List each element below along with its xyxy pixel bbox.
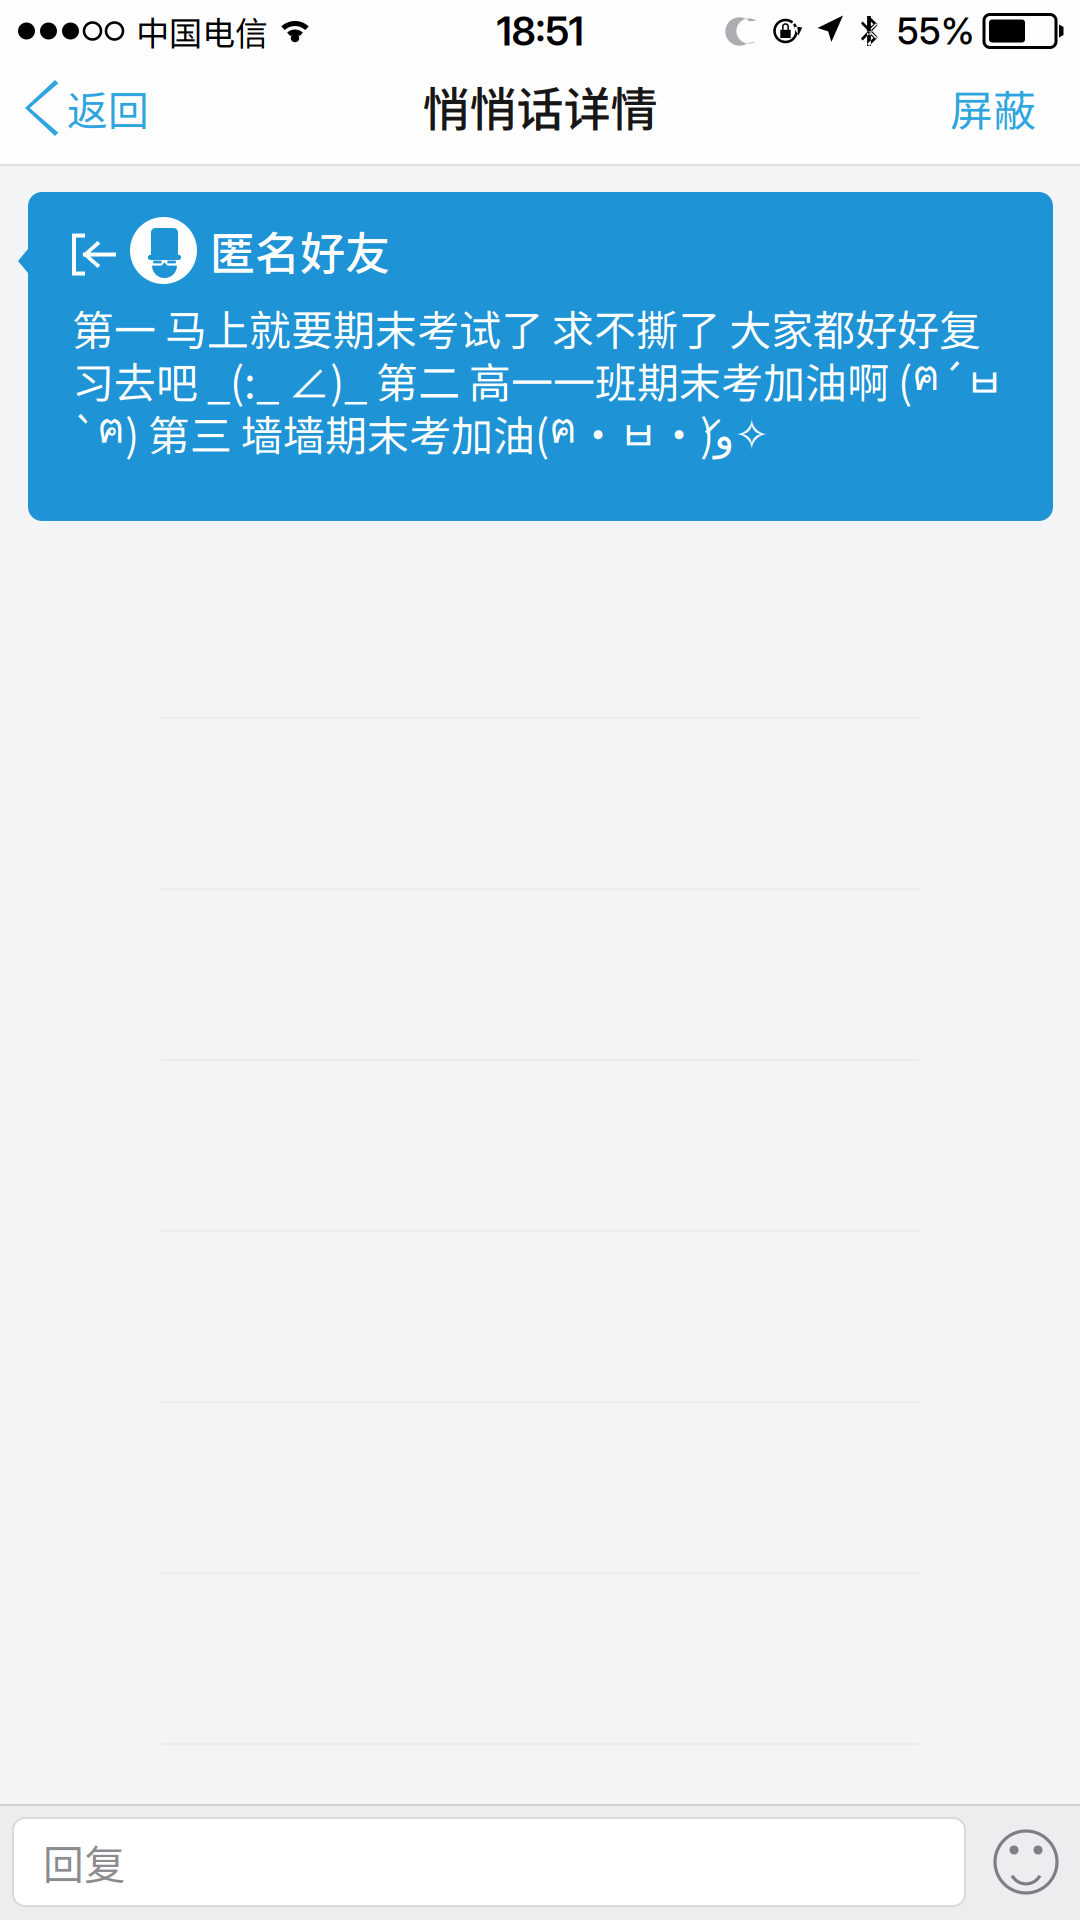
button[interactable]: 返回 <box>0 62 167 166</box>
staticText: 第一 马上就要期末考试了 求不撕了 大家都好好复习去吧 _(:_ ∠)_ 第二 … <box>72 305 1004 456</box>
staticText: 屏蔽 <box>950 77 1036 139</box>
staticText: 中国电信 <box>136 7 268 55</box>
staticText: 18:51 <box>496 7 583 55</box>
staticText: 悄悄话详情 <box>422 72 657 140</box>
staticText: 回复 <box>43 1832 125 1892</box>
staticText: 返回 <box>67 78 149 138</box>
staticText: 55% <box>897 9 974 53</box>
button[interactable]: 屏蔽 <box>924 62 1080 166</box>
button[interactable]: 表情 <box>965 1804 1080 1920</box>
button[interactable]: 回复 <box>13 1818 965 1906</box>
staticText: 匿名好友 <box>210 218 390 283</box>
